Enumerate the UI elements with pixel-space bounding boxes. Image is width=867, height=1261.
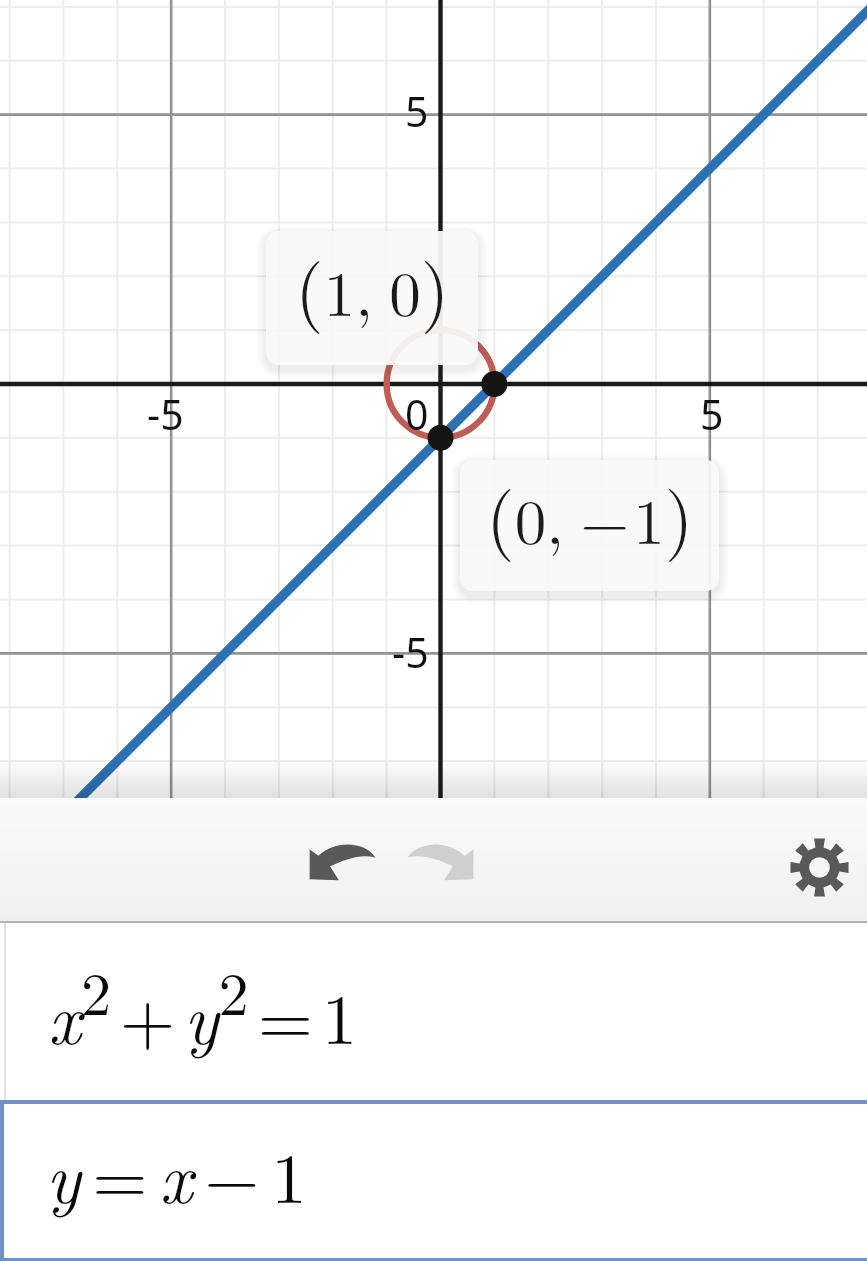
staticText: -5: [147, 386, 184, 442]
staticText: x2 + y2 = 1: [48, 947, 358, 1064]
button[interactable]: x2 + y2 = 1: [0, 923, 867, 1100]
staticText: (0, − 1): [486, 461, 694, 565]
staticText: 5: [405, 83, 429, 139]
button[interactable]: Undo: [306, 836, 379, 884]
staticText: (1, 0): [295, 233, 450, 337]
staticText: 5: [700, 386, 724, 442]
button[interactable]: Redo: [404, 836, 477, 884]
button[interactable]: (0, − 1): [460, 460, 719, 591]
staticText: 0: [405, 386, 429, 442]
button[interactable]: Settings: [790, 838, 849, 897]
button[interactable]: y = x − 1: [0, 1100, 867, 1261]
staticText: y = x − 1: [46, 1123, 307, 1224]
staticText: -5: [392, 624, 429, 680]
button[interactable]: (1, 0): [266, 231, 478, 365]
